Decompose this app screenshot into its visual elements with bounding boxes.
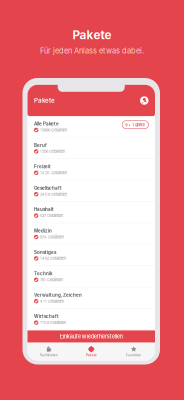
staticText: Sonstiges [34,249,56,255]
button[interactable]: Medizin [27,223,155,245]
button[interactable]: Haushalt [27,202,155,223]
staticText: Beruf [34,142,47,148]
button[interactable]: Freizeit [27,159,155,180]
button[interactable]: Pakete [70,343,112,360]
button[interactable]: Suchkarten [27,343,70,360]
staticText: Gesellschaft [34,185,62,191]
staticText: Technik [34,271,53,276]
staticText: Wirtschaft [34,314,59,319]
staticText: Einkäufe wiederherstellen [60,333,123,340]
staticText: 1420 Gebärden [40,170,67,175]
button[interactable]: Beruf [27,138,155,159]
button[interactable]: Verwaltung, Zeichen [27,287,155,309]
staticText: 1462 Gebärden [40,256,66,261]
staticText: 9 + 1 gratis! [125,122,145,127]
staticText: Suchkarten [40,353,58,357]
button[interactable]: Technik [27,266,155,287]
staticText: 2406 Gebärden [40,192,67,197]
staticText: Für jeden Anlass etwas dabei. [40,46,144,55]
staticText: Favoriten [126,353,141,357]
button[interactable]: Wirtschaft [27,309,155,330]
staticText: 1356 Gebärden [40,149,65,154]
button[interactable]: Konto [140,96,148,105]
staticText: 781 Gebärden [40,277,63,282]
staticText: Medizin [34,228,52,234]
staticText: Pakete [72,28,111,42]
staticText: 874 Gebärden [40,235,64,239]
staticText: Alle Pakete [34,121,59,127]
staticText: 1108 Gebärden [40,320,66,325]
staticText: 411 Gebärden [40,299,64,304]
button[interactable]: Alle Pakete [27,116,155,138]
staticText: Freizeit [34,164,51,169]
button[interactable]: 9 + 1 gratis! [122,121,148,129]
staticText: Pakete [86,353,97,357]
staticText: 537 Gebärden [40,213,63,218]
button[interactable]: Favoriten [112,343,155,360]
staticText: Verwaltung, Zeichen [34,292,82,298]
staticText: 15686 Gebärden [40,128,67,132]
staticText: Pakete [34,97,55,104]
button[interactable]: Einkäufe wiederherstellen [27,330,155,343]
staticText: Haushalt [34,207,54,212]
button[interactable]: Sonstiges [27,245,155,266]
button[interactable]: Gesellschaft [27,180,155,202]
